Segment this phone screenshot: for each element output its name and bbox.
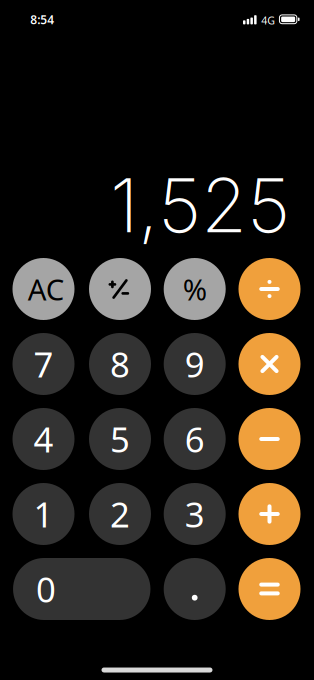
button[interactable]: Percent	[164, 258, 226, 320]
staticText: AC	[28, 269, 65, 308]
button[interactable]: 2	[89, 483, 151, 545]
button[interactable]: Equals	[238, 558, 300, 620]
button[interactable]: 6	[164, 408, 226, 470]
staticText: 9	[185, 341, 205, 387]
button[interactable]: Plus	[238, 483, 300, 545]
button[interactable]: Decimal point	[164, 558, 226, 620]
button[interactable]: Divide	[238, 258, 300, 320]
staticText: 0	[36, 566, 56, 612]
staticText: 2	[110, 491, 130, 537]
button[interactable]: 3	[164, 483, 226, 545]
button[interactable]: All clear	[12, 258, 74, 320]
button[interactable]: 1	[12, 483, 74, 545]
button[interactable]: 7	[12, 333, 74, 395]
staticText: 8	[110, 341, 130, 387]
button[interactable]: 9	[164, 333, 226, 395]
staticText: 4	[33, 416, 53, 462]
button[interactable]: 4	[12, 408, 74, 470]
staticText: 4G	[261, 13, 275, 27]
staticText: 7	[33, 341, 53, 387]
staticText: 3	[185, 491, 205, 537]
button[interactable]: 0	[13, 558, 150, 620]
staticText: %	[183, 269, 207, 308]
staticText: 1,525	[110, 160, 290, 250]
staticText: 8:54	[30, 11, 54, 27]
button[interactable]: Minus	[238, 408, 300, 470]
staticText: 1	[33, 491, 53, 537]
button[interactable]: Multiply	[238, 333, 300, 395]
staticText: 6	[185, 416, 205, 462]
staticText: 5	[110, 416, 130, 462]
button[interactable]: 5	[89, 408, 151, 470]
button[interactable]: 8	[89, 333, 151, 395]
button[interactable]: Plus or minus	[89, 258, 151, 320]
